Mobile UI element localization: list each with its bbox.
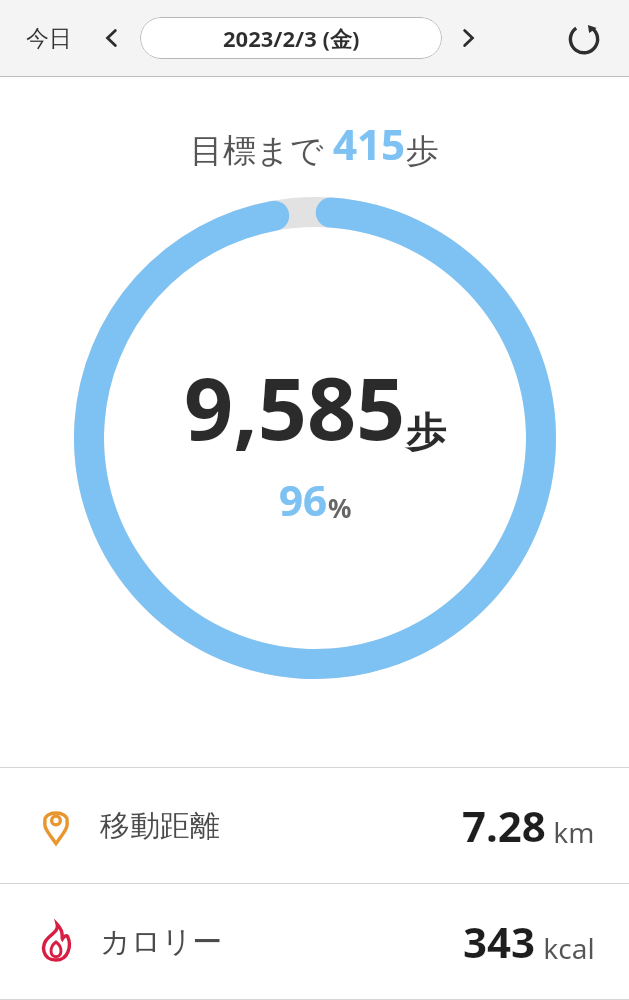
button[interactable]: Calories — [0, 884, 629, 999]
other: Distance — [34, 804, 78, 848]
staticText: 7.28 — [462, 797, 546, 854]
staticText: % — [328, 490, 352, 525]
staticText: カロリー — [100, 923, 223, 961]
other: Calories — [34, 920, 78, 964]
button[interactable]: Refresh — [561, 15, 607, 61]
staticText: 96 — [279, 471, 328, 528]
staticText: 歩 — [406, 407, 446, 457]
staticText: 今日 — [26, 24, 72, 53]
staticText: 2023/2/3 (金) — [223, 23, 360, 53]
staticText: 9,585 — [184, 348, 406, 465]
staticText: kcal — [536, 929, 595, 967]
button[interactable]: 2023/2/3 (金) — [140, 17, 442, 59]
staticText: 415 — [333, 115, 406, 172]
button[interactable]: 今日 — [20, 18, 78, 59]
button[interactable]: Next day — [448, 18, 488, 58]
button[interactable]: Distance — [0, 768, 629, 883]
staticText: 目標まで — [190, 127, 333, 172]
staticText: km — [546, 813, 595, 851]
button[interactable]: Previous day — [92, 18, 132, 58]
staticText: 移動距離 — [100, 807, 220, 845]
staticText: 歩 — [406, 130, 439, 172]
staticText: 343 — [463, 913, 536, 970]
